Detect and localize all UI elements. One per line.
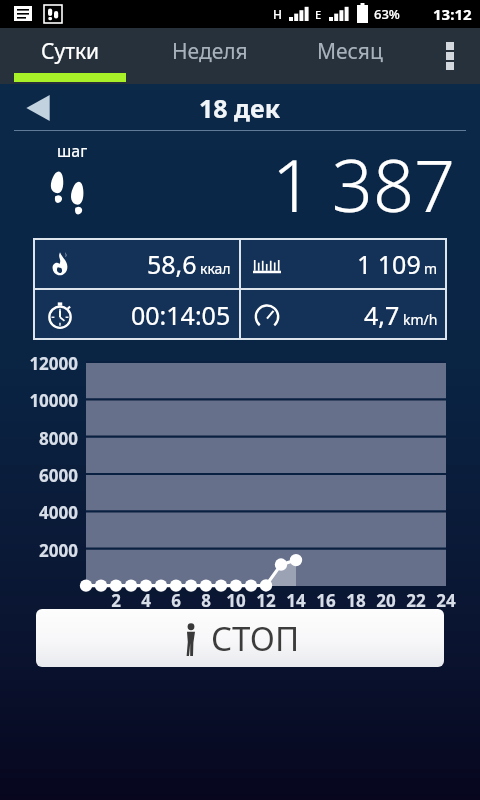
button[interactable]: СТОП: [36, 609, 444, 667]
staticText: 18: [339, 589, 373, 612]
staticText: E: [315, 7, 322, 22]
staticText: m: [424, 259, 438, 278]
staticText: Неделя: [172, 37, 248, 66]
staticText: 6000: [0, 464, 78, 487]
staticText: 12: [249, 589, 283, 612]
staticText: 10000: [0, 389, 78, 412]
staticText: 8000: [0, 427, 78, 450]
button[interactable]: Сутки: [0, 28, 140, 84]
staticText: 18 дек: [199, 91, 281, 125]
staticText: 4: [129, 589, 163, 612]
button[interactable]: 1 109: [241, 239, 446, 288]
staticText: шаг: [57, 140, 88, 162]
button[interactable]: More options: [420, 28, 480, 84]
staticText: 12000: [0, 352, 78, 375]
button[interactable]: Месяц: [280, 28, 420, 84]
staticText: 00:14:05: [131, 298, 231, 332]
staticText: 13:12: [433, 4, 472, 24]
staticText: 6: [159, 589, 193, 612]
button[interactable]: Неделя: [140, 28, 280, 84]
button[interactable]: 58,6: [34, 239, 239, 288]
staticText: 20: [369, 589, 403, 612]
staticText: ккал: [200, 259, 231, 278]
staticText: Месяц: [317, 37, 383, 66]
button[interactable]: 00:14:05: [34, 290, 239, 339]
staticText: 8: [189, 589, 223, 612]
staticText: 2: [99, 589, 133, 612]
staticText: 14: [279, 589, 313, 612]
staticText: СТОП: [211, 616, 300, 661]
staticText: 4000: [0, 501, 78, 524]
staticText: 24: [429, 589, 463, 612]
staticText: 22: [399, 589, 433, 612]
staticText: Сутки: [41, 37, 100, 66]
staticText: 10: [219, 589, 253, 612]
staticText: 1 387: [272, 135, 456, 227]
staticText: 2000: [0, 539, 78, 562]
staticText: 4,7: [364, 298, 400, 332]
staticText: 63%: [374, 5, 400, 23]
staticText: km/h: [403, 310, 438, 329]
button[interactable]: 4,7: [241, 290, 446, 339]
staticText: 1 109: [357, 247, 421, 281]
staticText: 16: [309, 589, 343, 612]
button[interactable]: Previous day: [12, 88, 64, 128]
staticText: 58,6: [147, 247, 197, 281]
staticText: H: [273, 6, 282, 22]
